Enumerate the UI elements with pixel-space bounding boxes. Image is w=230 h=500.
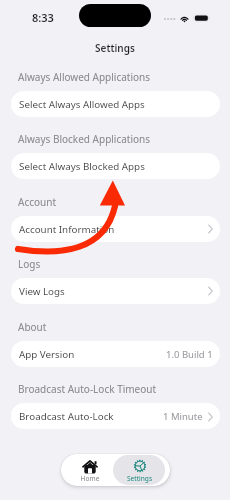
button[interactable]: Account Information bbox=[11, 216, 220, 242]
staticText: Broadcast Auto-Lock bbox=[19, 410, 114, 423]
staticText: 1 Minute bbox=[163, 410, 203, 423]
staticText: App Version bbox=[19, 348, 75, 361]
button[interactable]: Select Always Blocked Apps bbox=[11, 153, 220, 179]
staticText: Always Allowed Applications bbox=[18, 70, 151, 84]
staticText: Select Always Blocked Apps bbox=[19, 160, 145, 173]
staticText: Broadcast Auto-Lock Timeout bbox=[18, 382, 157, 396]
staticText: Account Information bbox=[19, 223, 115, 236]
staticText: Select Always Allowed Apps bbox=[19, 98, 145, 111]
button[interactable]: View Logs bbox=[11, 278, 220, 304]
staticText: 8:33 bbox=[32, 10, 54, 25]
staticText: Settings bbox=[0, 41, 230, 55]
staticText: Home bbox=[64, 474, 116, 483]
staticText: Always Blocked Applications bbox=[18, 132, 151, 146]
staticText: Settings bbox=[113, 474, 166, 483]
button[interactable]: Broadcast Auto-Lock bbox=[11, 403, 220, 429]
button[interactable]: Select Always Allowed Apps bbox=[11, 91, 220, 117]
staticText: Account bbox=[18, 195, 57, 209]
staticText: About bbox=[18, 320, 47, 334]
staticText: View Logs bbox=[19, 285, 65, 298]
button[interactable]: Settings bbox=[113, 454, 170, 486]
button[interactable]: App Version bbox=[11, 341, 220, 367]
staticText: Logs bbox=[18, 257, 41, 271]
button[interactable]: Home bbox=[61, 454, 113, 486]
staticText: 1.0 Build 1 bbox=[166, 348, 213, 361]
